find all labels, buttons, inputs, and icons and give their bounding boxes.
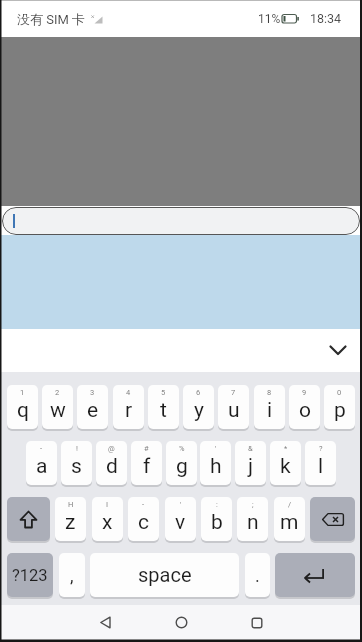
staticText: :	[216, 500, 218, 509]
button[interactable]: 1	[7, 385, 38, 429]
staticText: -	[40, 444, 43, 453]
staticText: 6	[196, 388, 201, 397]
staticText: 9	[302, 388, 307, 397]
button[interactable]	[175, 616, 188, 629]
button[interactable]: 4	[113, 385, 144, 429]
button[interactable]: 7	[218, 385, 249, 429]
button[interactable]: :	[201, 497, 232, 541]
button[interactable]: -	[26, 441, 57, 485]
staticText: e	[87, 398, 99, 423]
staticText: .	[255, 565, 260, 586]
button[interactable]: 8	[254, 385, 285, 429]
button[interactable]: *	[270, 441, 301, 485]
staticText: '	[180, 500, 182, 509]
button[interactable]: space	[90, 553, 239, 597]
staticText: #	[144, 444, 149, 453]
staticText: I	[106, 500, 109, 509]
staticText: y	[194, 398, 204, 423]
staticText: s	[71, 454, 82, 479]
staticText: f	[143, 454, 151, 479]
button[interactable]: ,	[59, 553, 85, 597]
staticText: 18:34	[310, 11, 342, 26]
staticText: 3	[90, 388, 95, 397]
staticText: @	[108, 444, 115, 453]
staticText: 11%	[258, 12, 281, 26]
button[interactable]: ?123	[7, 553, 53, 597]
staticText: b	[211, 510, 223, 535]
button[interactable]	[275, 553, 355, 597]
staticText: t	[160, 398, 167, 423]
staticText: p	[334, 398, 346, 423]
staticText: x	[102, 510, 113, 535]
button[interactable]: -	[128, 497, 159, 541]
staticText: ?	[319, 444, 323, 453]
staticText: 2	[55, 388, 60, 397]
staticText: 8	[267, 388, 272, 397]
button[interactable]: I	[92, 497, 123, 541]
staticText: -	[142, 500, 145, 509]
staticText: &	[248, 444, 253, 453]
staticText: 没有 SIM 卡	[17, 11, 86, 27]
staticText: 4	[126, 388, 131, 397]
staticText: h	[210, 454, 222, 479]
staticText: H	[68, 500, 74, 509]
staticText: 1	[20, 388, 25, 397]
staticText: z	[65, 510, 76, 535]
staticText: j	[248, 454, 254, 479]
button[interactable]: ?	[305, 441, 336, 485]
button[interactable]: 9	[289, 385, 320, 429]
staticText: /	[288, 500, 292, 509]
button[interactable]	[7, 497, 50, 541]
staticText: '	[215, 444, 217, 453]
staticText: d	[106, 454, 118, 479]
button[interactable]: H	[55, 497, 86, 541]
staticText: l	[318, 454, 324, 479]
button[interactable]	[2, 207, 360, 235]
staticText: !	[76, 444, 78, 453]
button[interactable]: 3	[77, 385, 108, 429]
button[interactable]: &	[235, 441, 266, 485]
button[interactable]: ;	[237, 497, 268, 541]
staticText: ;	[252, 500, 254, 509]
staticText: 7	[231, 388, 236, 397]
staticText: m	[280, 510, 299, 535]
staticText: g	[176, 454, 188, 479]
button[interactable]: 6	[183, 385, 214, 429]
staticText: ?123	[12, 566, 48, 585]
button[interactable]: !	[61, 441, 92, 485]
button[interactable]: '	[165, 497, 196, 541]
button[interactable]	[310, 497, 355, 541]
staticText: %	[179, 444, 185, 453]
staticText: *	[284, 444, 288, 453]
staticText: space	[138, 563, 192, 586]
button[interactable]: /	[274, 497, 305, 541]
staticText: u	[228, 398, 240, 423]
staticText: i	[267, 398, 273, 423]
button[interactable]	[330, 346, 346, 355]
staticText: 5	[161, 388, 166, 397]
button[interactable]: .	[245, 553, 270, 597]
staticText: o	[299, 398, 311, 423]
button[interactable]: '	[200, 441, 231, 485]
button[interactable]	[99, 616, 112, 629]
staticText: q	[17, 398, 29, 423]
staticText: ,	[70, 565, 74, 586]
staticText: n	[247, 510, 259, 535]
button[interactable]: 2	[42, 385, 73, 429]
staticText: c	[138, 510, 149, 535]
button[interactable]: %	[166, 441, 197, 485]
staticText: v	[175, 510, 186, 535]
staticText: a	[36, 454, 48, 479]
staticText: k	[280, 454, 291, 479]
button[interactable]: @	[96, 441, 127, 485]
button[interactable]: 5	[148, 385, 179, 429]
staticText: 0	[337, 388, 342, 397]
button[interactable]: 0	[324, 385, 355, 429]
staticText: r	[125, 398, 133, 423]
staticText: w	[50, 398, 66, 423]
button[interactable]	[251, 617, 263, 629]
button[interactable]: #	[131, 441, 162, 485]
